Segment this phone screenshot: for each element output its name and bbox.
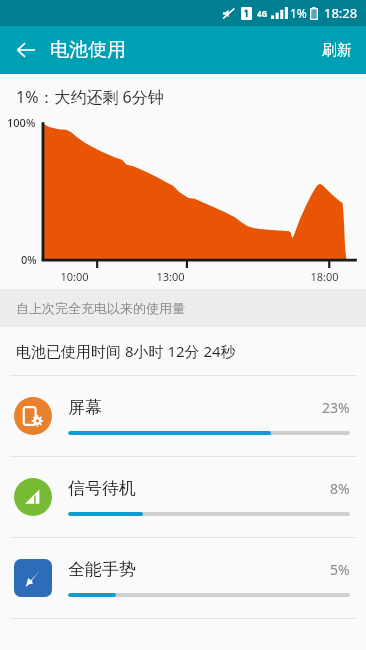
staticText: 5% — [330, 560, 350, 579]
button[interactable]: Back — [6, 30, 46, 70]
staticText: 13:00 — [156, 269, 185, 284]
staticText: 电池已使用时间 8小时 12分 24秒 — [16, 341, 236, 361]
staticText: 信号待机 — [68, 478, 330, 499]
staticText: 18:00 — [310, 269, 339, 284]
staticText: 1% — [290, 5, 307, 21]
staticText: 全能手势 — [68, 559, 330, 580]
staticText: 刷新 — [322, 41, 352, 60]
button[interactable]: 屏幕 — [0, 376, 366, 456]
staticText: 18:28 — [324, 4, 358, 22]
staticText: 10:00 — [60, 269, 89, 284]
button[interactable]: 刷新 — [308, 31, 366, 70]
staticText: 电池使用 — [50, 38, 126, 62]
staticText: 4G — [257, 8, 268, 19]
staticText: 8% — [330, 479, 350, 498]
button[interactable]: 信号待机 — [0, 457, 366, 537]
staticText: 0% — [21, 252, 37, 267]
staticText: 1%：大约还剩 6分钟 — [16, 86, 164, 108]
button[interactable]: 全能手势 — [0, 538, 366, 618]
staticText: 屏幕 — [68, 397, 322, 418]
staticText: 100% — [7, 115, 36, 130]
staticText: 自上次完全充电以来的使用量 — [16, 300, 185, 316]
staticText: 23% — [322, 398, 350, 417]
